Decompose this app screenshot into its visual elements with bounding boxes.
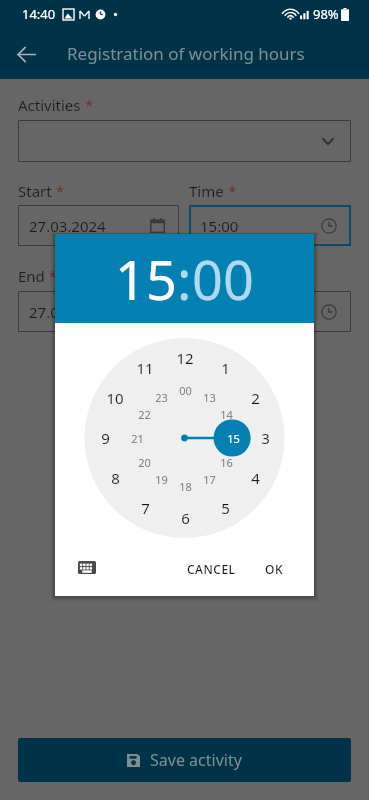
staticText: 5 [221,498,230,518]
staticText: 15 [227,431,240,446]
button[interactable]: 15:00 [189,205,351,246]
staticText: 23 [155,390,168,405]
staticText: * [52,181,65,201]
staticText: 8 [111,468,120,488]
staticText: 7 [141,498,150,518]
staticText: 15:00 [200,216,239,236]
staticText: 00 [179,383,192,398]
staticText: 21 [131,431,144,446]
button[interactable]: 27.03.2024 [18,291,179,332]
staticText: 1 [221,358,230,378]
staticText: Time [189,181,224,201]
button[interactable] [18,120,351,162]
staticText: OK [265,561,283,577]
button[interactable]: 15 [115,242,177,316]
staticText: 3 [261,428,270,448]
staticText: 2 [251,388,260,408]
staticText: 22 [138,407,151,422]
button[interactable]: Save activity [18,738,351,782]
staticText: 16 [220,455,233,470]
staticText: 4 [251,468,260,488]
staticText: 98% [313,5,339,23]
staticText: Start [18,181,52,201]
button[interactable]: 27.03.2024 [18,205,179,246]
staticText: 19 [155,472,168,487]
button[interactable]: Back [6,34,46,74]
staticText: CANCEL [187,561,236,577]
button[interactable]: 16:00 [189,291,351,332]
staticText: 20 [138,455,151,470]
staticText: 11 [136,358,154,378]
staticText: 14 [220,407,233,422]
staticText: 10 [106,388,124,408]
staticText: End [18,266,45,286]
staticText: * [224,266,237,286]
staticText: Registration of working hours [67,42,305,65]
button[interactable]: OK [257,556,291,582]
staticText: * [45,266,58,286]
staticText: 14:40 [22,5,56,23]
staticText: 18 [179,479,192,494]
button[interactable]: CANCEL [179,556,244,582]
staticText: 27.03.2024 [29,302,106,322]
staticText: Activities [18,95,81,115]
staticText: 9 [101,428,110,448]
staticText: Time [189,266,224,286]
staticText: Save activity [150,749,242,771]
staticText: 6 [181,508,190,528]
staticText: * [224,181,237,201]
staticText: 13 [203,390,216,405]
staticText: 12 [176,348,194,368]
staticText: : [177,242,192,316]
staticText: 17 [203,472,216,487]
button[interactable]: Switch to text input [72,553,102,581]
staticText: * [81,95,94,115]
staticText: 27.03.2024 [29,216,106,236]
button[interactable]: 00 [192,242,254,316]
